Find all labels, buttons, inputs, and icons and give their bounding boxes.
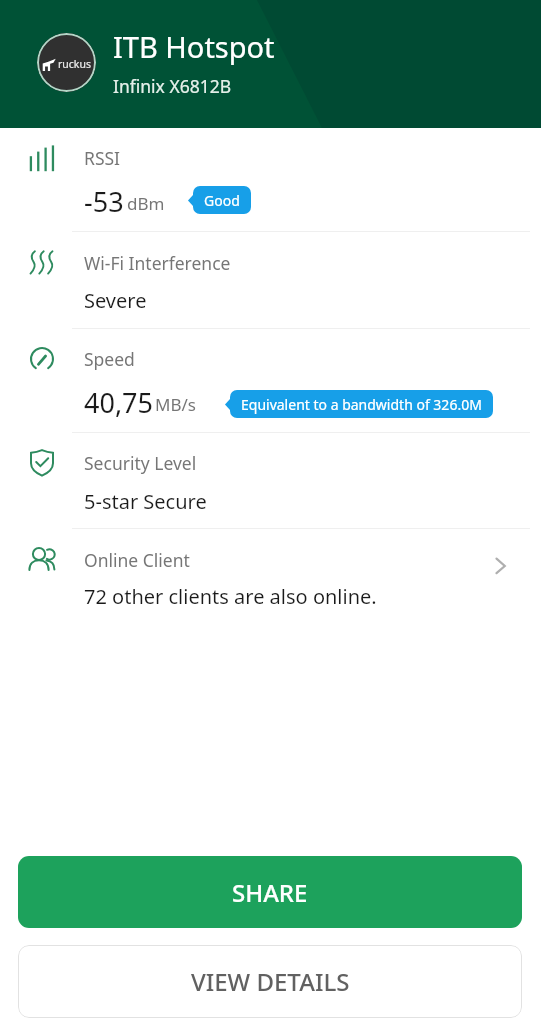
staticText: 5-star Secure — [84, 488, 207, 515]
button[interactable]: Speed — [0, 329, 541, 432]
staticText: -53 — [84, 183, 124, 217]
staticText: RSSI — [84, 146, 121, 170]
other: View online clients — [491, 555, 515, 579]
staticText: Infinix X6812B — [113, 74, 232, 98]
staticText: Good — [204, 191, 240, 210]
staticText: Online Client — [84, 548, 190, 572]
staticText: 40,75 — [84, 384, 154, 418]
staticText: Equivalent to a bandwidth of 326.0M — [241, 395, 482, 414]
button[interactable]: Wi-Fi Interference — [0, 232, 541, 328]
button[interactable]: VIEW DETAILS — [18, 945, 522, 1018]
staticText: Wi-Fi Interference — [84, 251, 231, 275]
staticText: Security Level — [84, 451, 197, 475]
staticText: VIEW DETAILS — [191, 965, 350, 998]
button[interactable]: SHARE — [18, 856, 522, 928]
staticText: SHARE — [232, 876, 308, 909]
staticText: ruckus — [58, 57, 91, 71]
button[interactable]: RSSI — [0, 128, 541, 231]
button[interactable]: Security Level — [0, 433, 541, 528]
button[interactable]: Online Client — [0, 529, 541, 629]
staticText: 72 other clients are also online. — [84, 583, 377, 610]
staticText: dBm — [127, 192, 165, 215]
staticText: MB/s — [155, 393, 196, 416]
staticText: ITB Hotspot — [113, 27, 275, 66]
staticText: Severe — [84, 287, 147, 314]
staticText: Speed — [84, 347, 135, 371]
